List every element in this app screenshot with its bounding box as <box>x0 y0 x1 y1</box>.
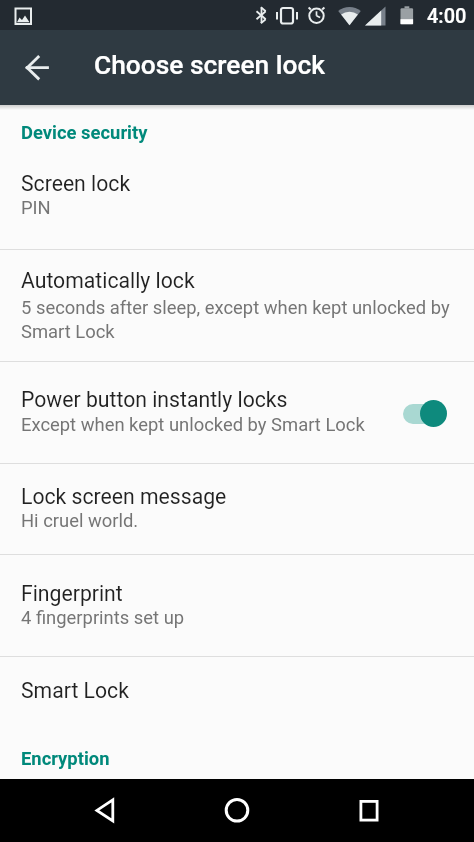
button[interactable] <box>345 786 393 834</box>
button[interactable]: Screen lock <box>0 150 474 249</box>
staticText: Fingerprint <box>21 581 123 606</box>
button[interactable]: Power button instantly locks <box>0 361 474 463</box>
staticText: Automatically lock <box>21 268 195 293</box>
staticText: Screen lock <box>21 171 131 196</box>
button[interactable] <box>16 44 64 92</box>
staticText: Smart Lock <box>21 678 129 703</box>
staticText: 5 seconds after sleep, except when kept … <box>21 297 450 319</box>
staticText: Encryption <box>21 748 110 770</box>
button[interactable] <box>213 786 261 834</box>
staticText: 4 fingerprints set up <box>21 607 185 629</box>
staticText: Smart Lock <box>21 321 115 343</box>
staticText: PIN <box>21 197 51 219</box>
button[interactable] <box>80 786 128 834</box>
staticText: Except when kept unlocked by Smart Lock <box>21 414 365 436</box>
staticText: 4:00 <box>427 4 467 27</box>
button[interactable]: Automatically lock <box>0 249 474 361</box>
staticText: Lock screen message <box>21 484 227 509</box>
staticText: Choose screen lock <box>94 50 325 81</box>
button[interactable]: Lock screen message <box>0 463 474 554</box>
staticText: Device security <box>21 122 148 144</box>
staticText: Hi cruel world. <box>21 510 139 532</box>
button[interactable]: Fingerprint <box>0 554 474 656</box>
staticText: Power button instantly locks <box>21 387 288 412</box>
button[interactable]: Smart Lock <box>0 656 474 731</box>
